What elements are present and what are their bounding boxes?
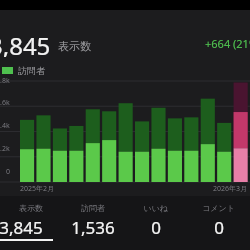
staticText: 3,845: [0, 216, 43, 239]
staticText: 2.4k: [0, 121, 10, 131]
button[interactable]: 訪問者: [2, 65, 45, 76]
button[interactable]: 表示数: [0, 203, 62, 250]
button[interactable]: いいね: [124, 203, 187, 250]
staticText: 訪問者: [81, 203, 105, 213]
button[interactable]: 3,845: [0, 29, 91, 57]
staticText: 2026年3月: [213, 184, 248, 194]
staticText: いいね: [143, 203, 168, 213]
staticText: 3.6k: [0, 98, 10, 108]
staticText: 0: [151, 216, 161, 239]
staticText: 2025年2月: [20, 184, 55, 194]
staticText: 0: [214, 216, 224, 239]
staticText: 0: [6, 167, 11, 177]
button[interactable]: コメント: [187, 203, 250, 250]
staticText: 表示数: [19, 203, 43, 213]
staticText: +664 (21%): [205, 36, 250, 51]
staticText: 訪問者: [18, 65, 45, 76]
staticText: 1,536: [71, 216, 115, 239]
staticText: 3,845: [0, 29, 51, 57]
staticText: 4.8k: [0, 76, 10, 86]
staticText: コメント: [202, 203, 235, 213]
button[interactable]: 訪問者: [62, 203, 124, 250]
staticText: 1.2k: [0, 144, 10, 154]
staticText: 表示数: [58, 39, 91, 53]
